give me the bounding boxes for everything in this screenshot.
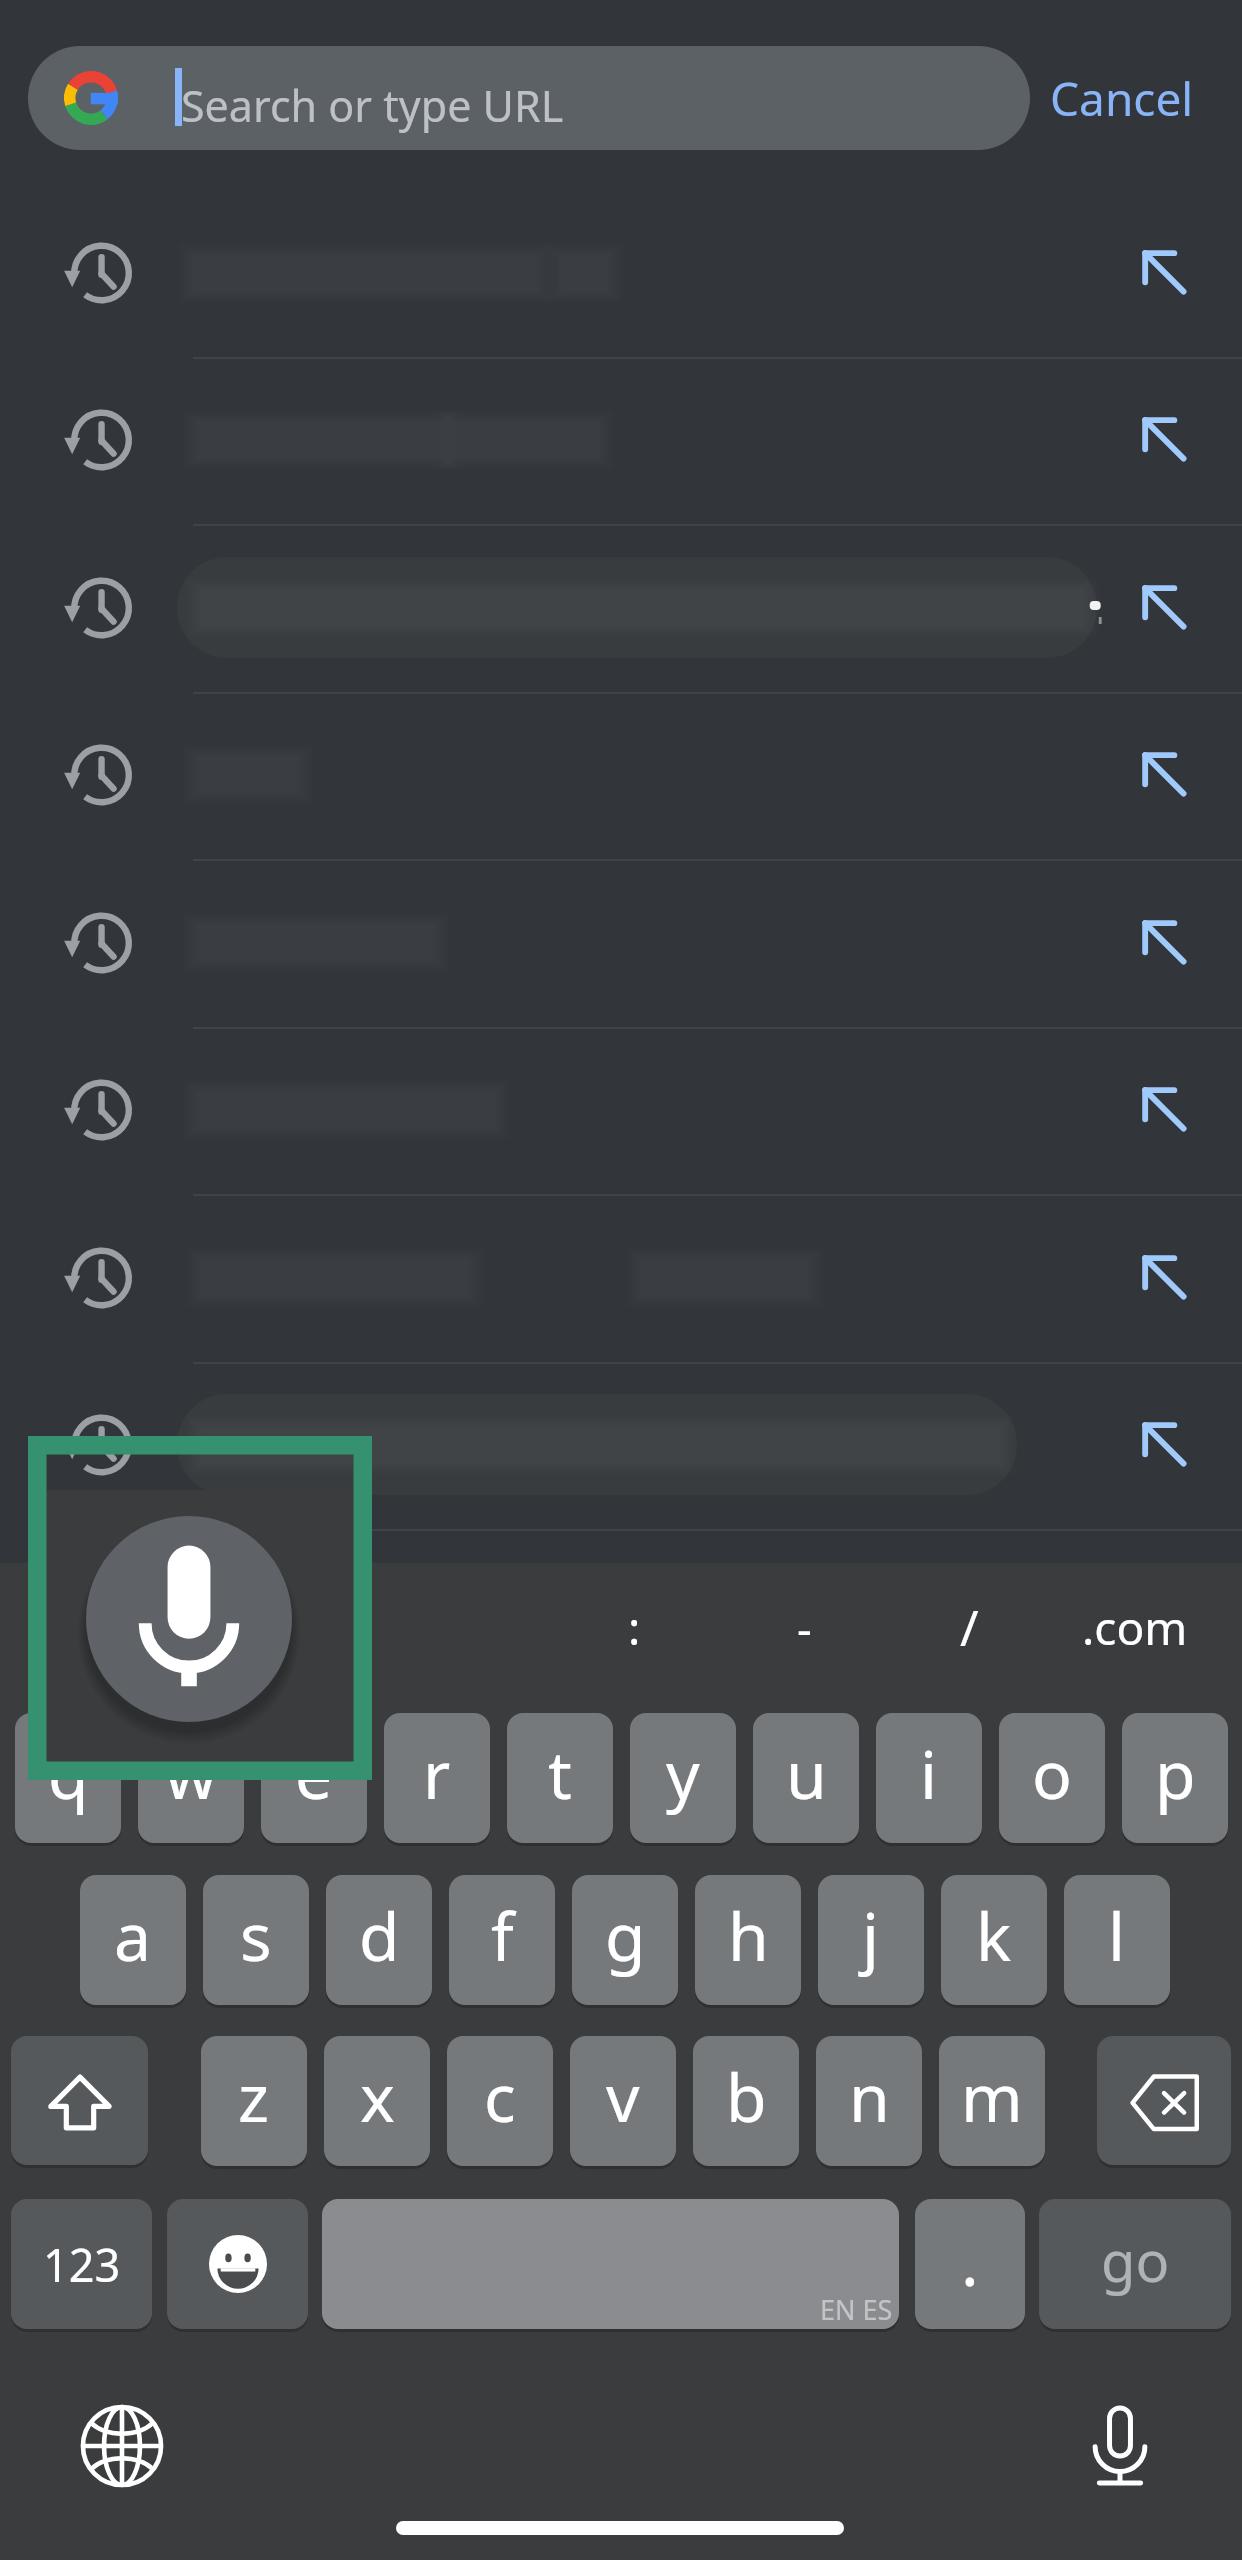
button[interactable]: n [816,2036,922,2166]
button[interactable]: z [201,2036,307,2166]
staticText: h [728,1890,769,1980]
staticText: 123 [43,2234,121,2295]
button[interactable]: Space [322,2199,899,2329]
button[interactable]: g [572,1875,678,2005]
button[interactable]: l [1064,1875,1170,2005]
staticText: - [797,1596,812,1659]
staticText: x [360,2051,395,2141]
button[interactable]: f [449,1875,555,2005]
button[interactable]: 123 [11,2199,152,2329]
button[interactable]: m [939,2036,1045,2166]
staticText: c [484,2051,516,2141]
button[interactable] [0,357,1242,524]
staticText: Cancel [1050,67,1194,130]
button[interactable]: q [15,1713,121,1843]
button[interactable]: c [447,2036,553,2166]
staticText: w [165,1728,217,1818]
button[interactable]: y [630,1713,736,1843]
button[interactable]: : [544,1563,724,1691]
button[interactable]: u [753,1713,859,1843]
staticText: o [1032,1728,1072,1818]
staticText: q [48,1728,89,1818]
button[interactable]: Voice search [86,1516,292,1722]
staticText: u [786,1728,827,1818]
staticText: v [606,2051,640,2141]
button[interactable]: Cancel [1046,46,1198,150]
button[interactable] [0,525,1242,692]
staticText: y [666,1728,700,1818]
staticText: Search or type URL [181,76,564,135]
button[interactable]: d [326,1875,432,2005]
staticText: s [240,1890,272,1980]
staticText: EN ES [820,2291,893,2328]
button[interactable] [0,1195,1242,1362]
staticText: g [605,1890,646,1980]
button[interactable]: / [879,1563,1059,1691]
button[interactable]: Voice input [1058,2384,1182,2508]
button[interactable]: go [1039,2199,1231,2329]
staticText: k [976,1890,1012,1980]
button[interactable] [0,692,1242,859]
button[interactable]: Emoji [167,2199,308,2329]
staticText: go [1101,2222,1170,2298]
button[interactable]: j [818,1875,924,2005]
staticText: b [726,2051,767,2141]
staticText: f [491,1890,514,1980]
button[interactable]: Shift [11,2036,148,2165]
button[interactable]: h [695,1875,801,2005]
button[interactable]: Switch language [60,2384,184,2508]
button[interactable]: t [507,1713,613,1843]
button[interactable]: . [915,2199,1025,2329]
staticText: a [114,1890,152,1980]
button[interactable]: Backspace [1097,2036,1231,2165]
button[interactable]: b [693,2036,799,2166]
staticText: t [548,1728,572,1818]
button[interactable]: v [570,2036,676,2166]
button[interactable] [0,1362,1242,1529]
button[interactable]: o [999,1713,1105,1843]
button[interactable]: w [138,1713,244,1843]
button[interactable]: k [941,1875,1047,2005]
button[interactable]: x [324,2036,430,2166]
button[interactable]: e [261,1713,367,1843]
staticText: r [423,1728,451,1818]
button[interactable]: Search or type URL [28,46,1030,150]
button[interactable]: a [80,1875,186,2005]
staticText: / [960,1593,979,1661]
staticText: i [920,1728,938,1818]
button[interactable]: r [384,1713,490,1843]
staticText: d [359,1890,400,1980]
staticText: e [295,1728,333,1818]
staticText: n [849,2051,890,2141]
button[interactable]: s [203,1875,309,2005]
button[interactable]: - [714,1563,894,1691]
button[interactable] [0,190,1242,357]
button[interactable]: .com [1045,1563,1225,1691]
button[interactable] [0,1027,1242,1194]
staticText: . [961,2215,979,2305]
staticText: l [1108,1890,1126,1980]
staticText: : [628,1596,641,1659]
button[interactable] [0,860,1242,1027]
staticText: j [862,1890,880,1980]
staticText: z [238,2051,270,2141]
button[interactable]: p [1122,1713,1228,1843]
staticText: p [1155,1728,1196,1818]
staticText: .com [1082,1596,1188,1659]
button[interactable]: i [876,1713,982,1843]
staticText: m [961,2051,1023,2141]
